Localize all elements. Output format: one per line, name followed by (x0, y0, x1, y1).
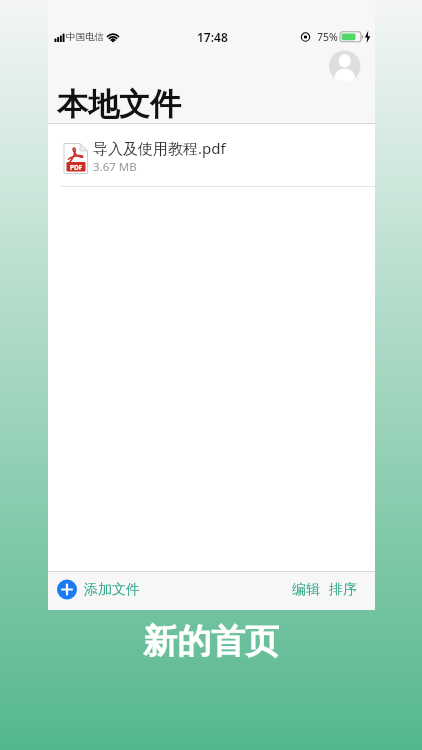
button[interactable] (48, 124, 375, 186)
staticText: 75% (317, 30, 338, 44)
staticText: 新的首页 (143, 620, 279, 660)
button[interactable]: 排序 (328, 580, 358, 599)
staticText: PDF (70, 163, 83, 172)
staticText: 17:48 (197, 29, 228, 45)
staticText: 排序 (329, 581, 357, 599)
button[interactable]: 编辑 (291, 580, 321, 599)
button[interactable] (56, 578, 80, 602)
button[interactable]: 添加文件 (84, 580, 146, 599)
staticText: 中国电信 (66, 31, 104, 43)
staticText: 本地文件 (57, 85, 181, 124)
button[interactable] (329, 50, 361, 82)
staticText: 3.67 MB (93, 159, 137, 174)
staticText: 导入及使用教程.pdf (93, 138, 226, 158)
staticText: 添加文件 (84, 581, 140, 599)
staticText: 编辑 (292, 581, 320, 599)
